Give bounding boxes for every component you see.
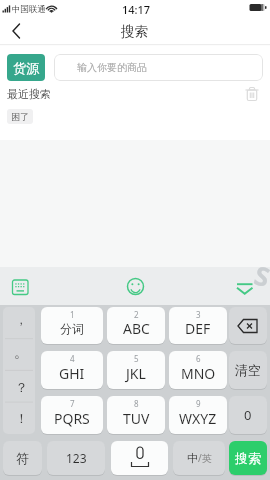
- staticText: 困了: [11, 111, 29, 122]
- staticText: 最近搜索: [7, 87, 51, 101]
- staticText: 2: [134, 309, 139, 320]
- button[interactable]: ？: [3, 371, 35, 402]
- staticText: /英: [198, 451, 212, 465]
- button[interactable]: [8, 276, 32, 298]
- staticText: 9: [196, 398, 201, 409]
- button[interactable]: [234, 276, 256, 298]
- button[interactable]: 1: [41, 307, 103, 344]
- button[interactable]: [111, 441, 168, 475]
- staticText: DEF: [185, 319, 211, 338]
- button[interactable]: 货源: [7, 54, 45, 81]
- staticText: 中: [187, 451, 198, 465]
- staticText: TUV: [123, 409, 150, 428]
- staticText: WXYZ: [179, 409, 217, 428]
- staticText: 分词: [60, 321, 84, 336]
- button[interactable]: 搜索: [229, 441, 267, 475]
- button[interactable]: [229, 307, 267, 344]
- staticText: ，: [15, 312, 27, 327]
- button[interactable]: 清空: [229, 351, 267, 389]
- staticText: 清空: [235, 362, 261, 378]
- staticText: MNO: [181, 364, 216, 383]
- staticText: 输入你要的商品: [77, 61, 147, 74]
- button[interactable]: 中: [173, 441, 225, 475]
- button[interactable]: 。: [3, 339, 35, 370]
- button[interactable]: [242, 84, 262, 104]
- button[interactable]: 8: [107, 396, 165, 434]
- button[interactable]: 9: [169, 396, 227, 434]
- button[interactable]: 输入你要的商品: [54, 54, 263, 81]
- staticText: 0: [244, 406, 252, 424]
- button[interactable]: ，: [3, 307, 35, 338]
- button[interactable]: 符: [3, 441, 42, 475]
- staticText: ！: [15, 410, 28, 426]
- button[interactable]: 6: [169, 351, 227, 389]
- staticText: S: [250, 257, 270, 294]
- staticText: ？: [15, 379, 28, 395]
- staticText: 8: [134, 398, 139, 409]
- staticText: 7: [70, 398, 75, 409]
- button[interactable]: ！: [3, 402, 35, 433]
- button[interactable]: 0: [229, 396, 267, 434]
- staticText: 货源: [13, 60, 39, 76]
- staticText: 6: [196, 353, 201, 364]
- staticText: 搜索: [121, 23, 148, 40]
- staticText: 1: [70, 309, 75, 320]
- button[interactable]: 4: [41, 351, 103, 389]
- staticText: 中国联通: [12, 4, 46, 15]
- staticText: GHI: [59, 364, 85, 383]
- staticText: 4: [70, 353, 75, 364]
- staticText: 14:17: [122, 2, 151, 17]
- staticText: JKL: [126, 364, 146, 383]
- staticText: 5: [134, 353, 139, 364]
- staticText: 搜索: [235, 450, 261, 466]
- button[interactable]: [124, 275, 148, 299]
- staticText: 符: [16, 450, 29, 466]
- staticText: 3: [196, 309, 201, 320]
- staticText: 。: [14, 344, 28, 362]
- staticText: ABC: [123, 319, 150, 338]
- button[interactable]: 困了: [7, 109, 33, 124]
- button[interactable]: [4, 20, 30, 46]
- staticText: PQRS: [54, 409, 90, 428]
- staticText: 123: [66, 450, 87, 466]
- button[interactable]: 7: [41, 396, 103, 434]
- button[interactable]: 2: [107, 307, 165, 344]
- button[interactable]: 123: [47, 441, 105, 475]
- button[interactable]: 3: [169, 307, 227, 344]
- button[interactable]: 5: [107, 351, 165, 389]
